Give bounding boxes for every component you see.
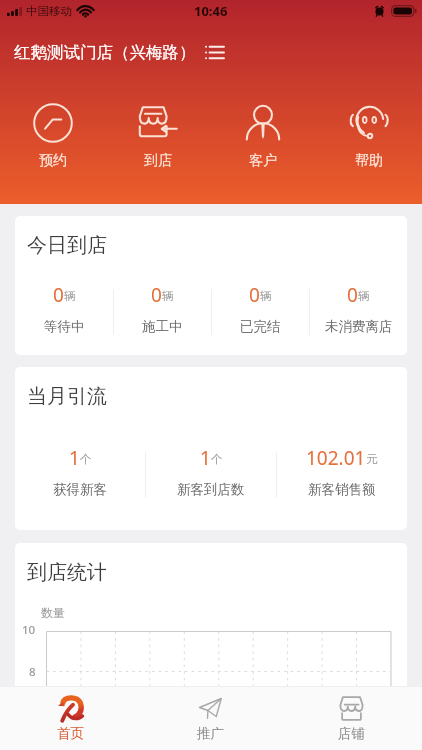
- button[interactable]: 到店: [105, 103, 210, 170]
- button[interactable]: 门店列表: [196, 34, 232, 70]
- staticText: 推广: [197, 725, 224, 742]
- staticText: 等待中: [44, 318, 85, 335]
- staticText: 1: [69, 445, 80, 471]
- button[interactable]: 客户: [210, 103, 316, 170]
- staticText: 中国移动: [26, 4, 72, 18]
- button[interactable]: 0: [310, 282, 407, 335]
- staticText: 10:46: [194, 2, 228, 20]
- staticText: 10: [22, 622, 36, 638]
- staticText: 0: [53, 282, 64, 308]
- staticText: 辆: [260, 289, 272, 303]
- button[interactable]: 0: [212, 282, 309, 335]
- staticText: 102.01: [306, 445, 366, 471]
- staticText: 0: [249, 282, 260, 308]
- staticText: 已完结: [240, 318, 281, 335]
- staticText: 0: [151, 282, 162, 308]
- staticText: 个: [211, 452, 223, 466]
- button[interactable]: 0: [15, 282, 113, 335]
- staticText: 到店统计: [27, 560, 107, 585]
- staticText: 客户: [249, 152, 277, 170]
- button[interactable]: 预约: [0, 103, 105, 170]
- staticText: 辆: [358, 289, 370, 303]
- button[interactable]: 帮助: [316, 103, 422, 170]
- button[interactable]: 首页: [0, 687, 140, 750]
- staticText: 帮助: [355, 152, 383, 170]
- staticText: 获得新客: [53, 481, 107, 498]
- button[interactable]: 推广: [140, 687, 281, 750]
- staticText: 0: [347, 282, 358, 308]
- staticText: 新客销售额: [308, 481, 376, 498]
- staticText: 施工中: [142, 318, 183, 335]
- button[interactable]: 0: [114, 282, 211, 335]
- staticText: 1: [200, 445, 211, 471]
- staticText: 辆: [162, 289, 174, 303]
- staticText: 个: [80, 452, 92, 466]
- staticText: 红鹅测试门店（兴梅路）: [14, 42, 196, 63]
- staticText: 辆: [64, 289, 76, 303]
- staticText: 当月引流: [27, 384, 107, 409]
- staticText: 今日到店: [27, 233, 107, 258]
- button[interactable]: 1: [15, 445, 145, 498]
- staticText: 元: [366, 452, 378, 466]
- staticText: 首页: [57, 725, 84, 742]
- staticText: 到店: [144, 152, 172, 170]
- staticText: 预约: [39, 152, 67, 170]
- staticText: 店铺: [338, 725, 365, 742]
- button[interactable]: 102.01: [277, 445, 407, 498]
- staticText: 未消费离店: [325, 318, 393, 335]
- button[interactable]: 1: [146, 445, 276, 498]
- staticText: 8: [29, 664, 36, 680]
- button[interactable]: 店铺: [281, 687, 422, 750]
- staticText: 新客到店数: [177, 481, 245, 498]
- staticText: 数量: [41, 605, 65, 620]
